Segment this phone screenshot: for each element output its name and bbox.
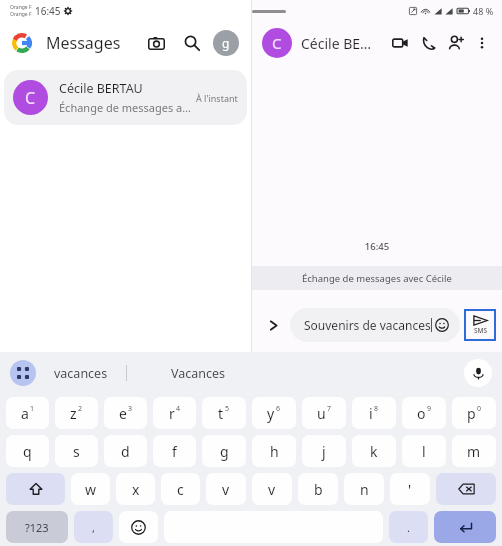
button[interactable]: q xyxy=(6,435,49,467)
staticText: 48 % xyxy=(473,5,494,17)
staticText: Échange de messages avec Cécile xyxy=(302,272,452,285)
staticText: n xyxy=(360,480,369,499)
button[interactable]: v xyxy=(206,473,246,505)
button[interactable]: v xyxy=(252,473,292,505)
staticText: Orange F xyxy=(10,11,32,18)
staticText: C xyxy=(25,87,36,109)
button[interactable]: More options xyxy=(470,31,494,55)
button[interactable]: b xyxy=(298,473,338,505)
button[interactable]: Vacances xyxy=(171,365,226,382)
button[interactable]: y xyxy=(252,397,296,429)
button[interactable]: d xyxy=(104,435,147,467)
staticText: SMS xyxy=(474,326,488,335)
button[interactable]: enter xyxy=(434,511,496,543)
staticText: k xyxy=(370,442,378,461)
staticText: d xyxy=(121,442,130,461)
button[interactable]: i xyxy=(352,397,396,429)
button[interactable]: emoji xyxy=(119,511,158,543)
staticText: C xyxy=(272,33,282,53)
button[interactable]: C xyxy=(262,28,292,58)
staticText: ' xyxy=(408,480,412,499)
button[interactable]: Send SMS xyxy=(466,311,494,339)
staticText: e xyxy=(119,404,127,423)
staticText: 16:45 xyxy=(252,240,502,253)
staticText: r xyxy=(169,404,175,423)
staticText: v xyxy=(222,480,230,499)
staticText: 5 xyxy=(225,404,230,414)
button[interactable]: g xyxy=(202,435,246,467)
staticText: Échange de messages avec … xyxy=(59,100,192,115)
staticText: a xyxy=(21,404,29,423)
staticText: y xyxy=(267,404,275,423)
button[interactable]: Toolbar xyxy=(10,360,36,386)
button[interactable]: vacances xyxy=(54,365,108,382)
staticText: j xyxy=(322,442,326,461)
button[interactable]: Expand xyxy=(260,312,286,338)
staticText: g xyxy=(222,35,230,51)
staticText: s xyxy=(73,442,80,461)
staticText: u xyxy=(317,404,326,423)
button[interactable]: k xyxy=(352,435,396,467)
button[interactable]: shift xyxy=(6,473,65,505)
staticText: Cécile BE… xyxy=(301,34,372,53)
button[interactable]: a xyxy=(6,397,49,429)
staticText: p xyxy=(467,404,476,423)
button[interactable]: n xyxy=(344,473,384,505)
button[interactable]: Souvenirs de vacances xyxy=(290,308,460,342)
staticText: Souvenirs de vacances xyxy=(304,317,431,333)
button[interactable]: Emoji xyxy=(432,314,452,336)
staticText: Vacances xyxy=(171,365,226,382)
button[interactable]: Call xyxy=(414,29,442,57)
button[interactable]: Camera xyxy=(141,28,171,58)
button[interactable]: e xyxy=(104,397,147,429)
button[interactable]: p xyxy=(452,397,496,429)
button[interactable]: Voice input xyxy=(464,359,492,387)
button[interactable]: ' xyxy=(390,473,430,505)
button[interactable]: Account xyxy=(213,30,239,56)
button[interactable]: Search xyxy=(177,28,207,58)
button[interactable]: Video call xyxy=(386,29,414,57)
button[interactable]: ?123 xyxy=(6,511,68,543)
staticText: 1 xyxy=(30,404,35,414)
button[interactable]: t xyxy=(202,397,246,429)
staticText: 9 xyxy=(427,404,432,414)
button[interactable]: u xyxy=(302,397,346,429)
staticText: 4 xyxy=(176,404,181,414)
staticText: 8 xyxy=(374,404,379,414)
button[interactable]: f xyxy=(153,435,196,467)
staticText: x xyxy=(132,480,140,499)
staticText: i xyxy=(369,404,373,423)
staticText: l xyxy=(422,442,426,461)
button[interactable]: s xyxy=(55,435,98,467)
button[interactable]: c xyxy=(161,473,200,505)
staticText: c xyxy=(177,480,184,499)
staticText: , xyxy=(92,520,95,535)
button[interactable]: z xyxy=(55,397,98,429)
button[interactable]: C xyxy=(4,70,247,125)
button[interactable]: o xyxy=(402,397,446,429)
button[interactable]: x xyxy=(116,473,155,505)
staticText: 7 xyxy=(327,404,332,414)
staticText: b xyxy=(314,480,323,499)
button[interactable]: h xyxy=(252,435,296,467)
button[interactable]: m xyxy=(452,435,496,467)
staticText: 6 xyxy=(276,404,281,414)
staticText: m xyxy=(467,442,481,461)
button[interactable]: j xyxy=(302,435,346,467)
staticText: t xyxy=(218,404,224,423)
button[interactable]: back xyxy=(436,473,496,505)
staticText: q xyxy=(23,442,32,461)
staticText: 2 xyxy=(78,404,83,414)
staticText: o xyxy=(417,404,426,423)
button[interactable]: , xyxy=(74,511,113,543)
staticText: . xyxy=(407,520,410,535)
button[interactable]: . xyxy=(389,511,428,543)
staticText: 3 xyxy=(128,404,133,414)
button[interactable]: r xyxy=(153,397,196,429)
button[interactable]: l xyxy=(402,435,446,467)
button[interactable]: Add people xyxy=(442,29,470,57)
button[interactable]: w xyxy=(71,473,110,505)
staticText: vacances xyxy=(54,365,108,382)
staticText: f xyxy=(172,442,177,461)
